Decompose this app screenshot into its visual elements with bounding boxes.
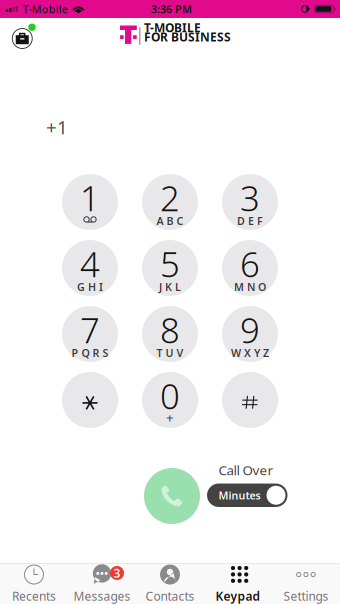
staticText: T-MOBILE (144, 20, 201, 35)
button[interactable]: 0 (142, 372, 198, 428)
button[interactable] (62, 372, 118, 428)
staticText: P Q R S (71, 346, 108, 360)
staticText: G H I (77, 280, 103, 294)
staticText: Keypad (215, 588, 260, 604)
staticText: T U V (156, 346, 183, 360)
staticText: 0 (160, 373, 180, 419)
staticText: A B C (156, 214, 183, 228)
staticText: M N O (234, 280, 266, 294)
button[interactable]: 6 (222, 240, 278, 296)
staticText: 6 (240, 241, 260, 287)
staticText: J K L (159, 280, 181, 294)
button[interactable]: Settings (272, 564, 340, 604)
staticText: W X Y Z (231, 346, 269, 360)
staticText: 7 (80, 307, 100, 353)
staticText: D E F (237, 214, 263, 228)
button[interactable]: Contacts (136, 564, 204, 604)
staticText: Minutes (218, 488, 260, 502)
staticText: 9 (240, 307, 260, 353)
button[interactable]: 7 (62, 306, 118, 362)
staticText: 3:36 PM (151, 2, 192, 16)
staticText: Recents (12, 588, 56, 604)
button[interactable]: Call over Minutes (207, 483, 287, 507)
staticText: FOR BUSINESS (144, 29, 231, 45)
staticText: Settings (283, 588, 328, 604)
button[interactable]: 8 (142, 306, 198, 362)
staticText: 4 (80, 241, 100, 287)
button[interactable]: 5 (142, 240, 198, 296)
staticText: Call Over (218, 461, 273, 479)
staticText: +1 (46, 115, 68, 139)
staticText: Messages (73, 588, 130, 604)
staticText: 3 (113, 565, 120, 581)
button[interactable]: 9 (222, 306, 278, 362)
staticText: 2 (160, 175, 180, 221)
button[interactable]: Recents (0, 564, 68, 604)
staticText: 1 (80, 175, 100, 221)
button[interactable]: 3 (222, 174, 278, 230)
staticText: 3 (240, 175, 260, 221)
staticText: 8 (160, 307, 180, 353)
button[interactable]: Call (144, 468, 200, 524)
staticText: + (166, 408, 174, 426)
button[interactable]: 2 (142, 174, 198, 230)
button[interactable]: 1 (62, 174, 118, 230)
staticText: 5 (160, 241, 180, 287)
staticText: T-Mobile (23, 2, 68, 16)
button[interactable]: Keypad (204, 564, 272, 604)
button[interactable]: 4 (62, 240, 118, 296)
staticText: Contacts (145, 588, 194, 604)
button[interactable]: Business profile (10, 22, 37, 49)
button[interactable] (222, 372, 278, 428)
button[interactable]: Messages (68, 564, 136, 604)
